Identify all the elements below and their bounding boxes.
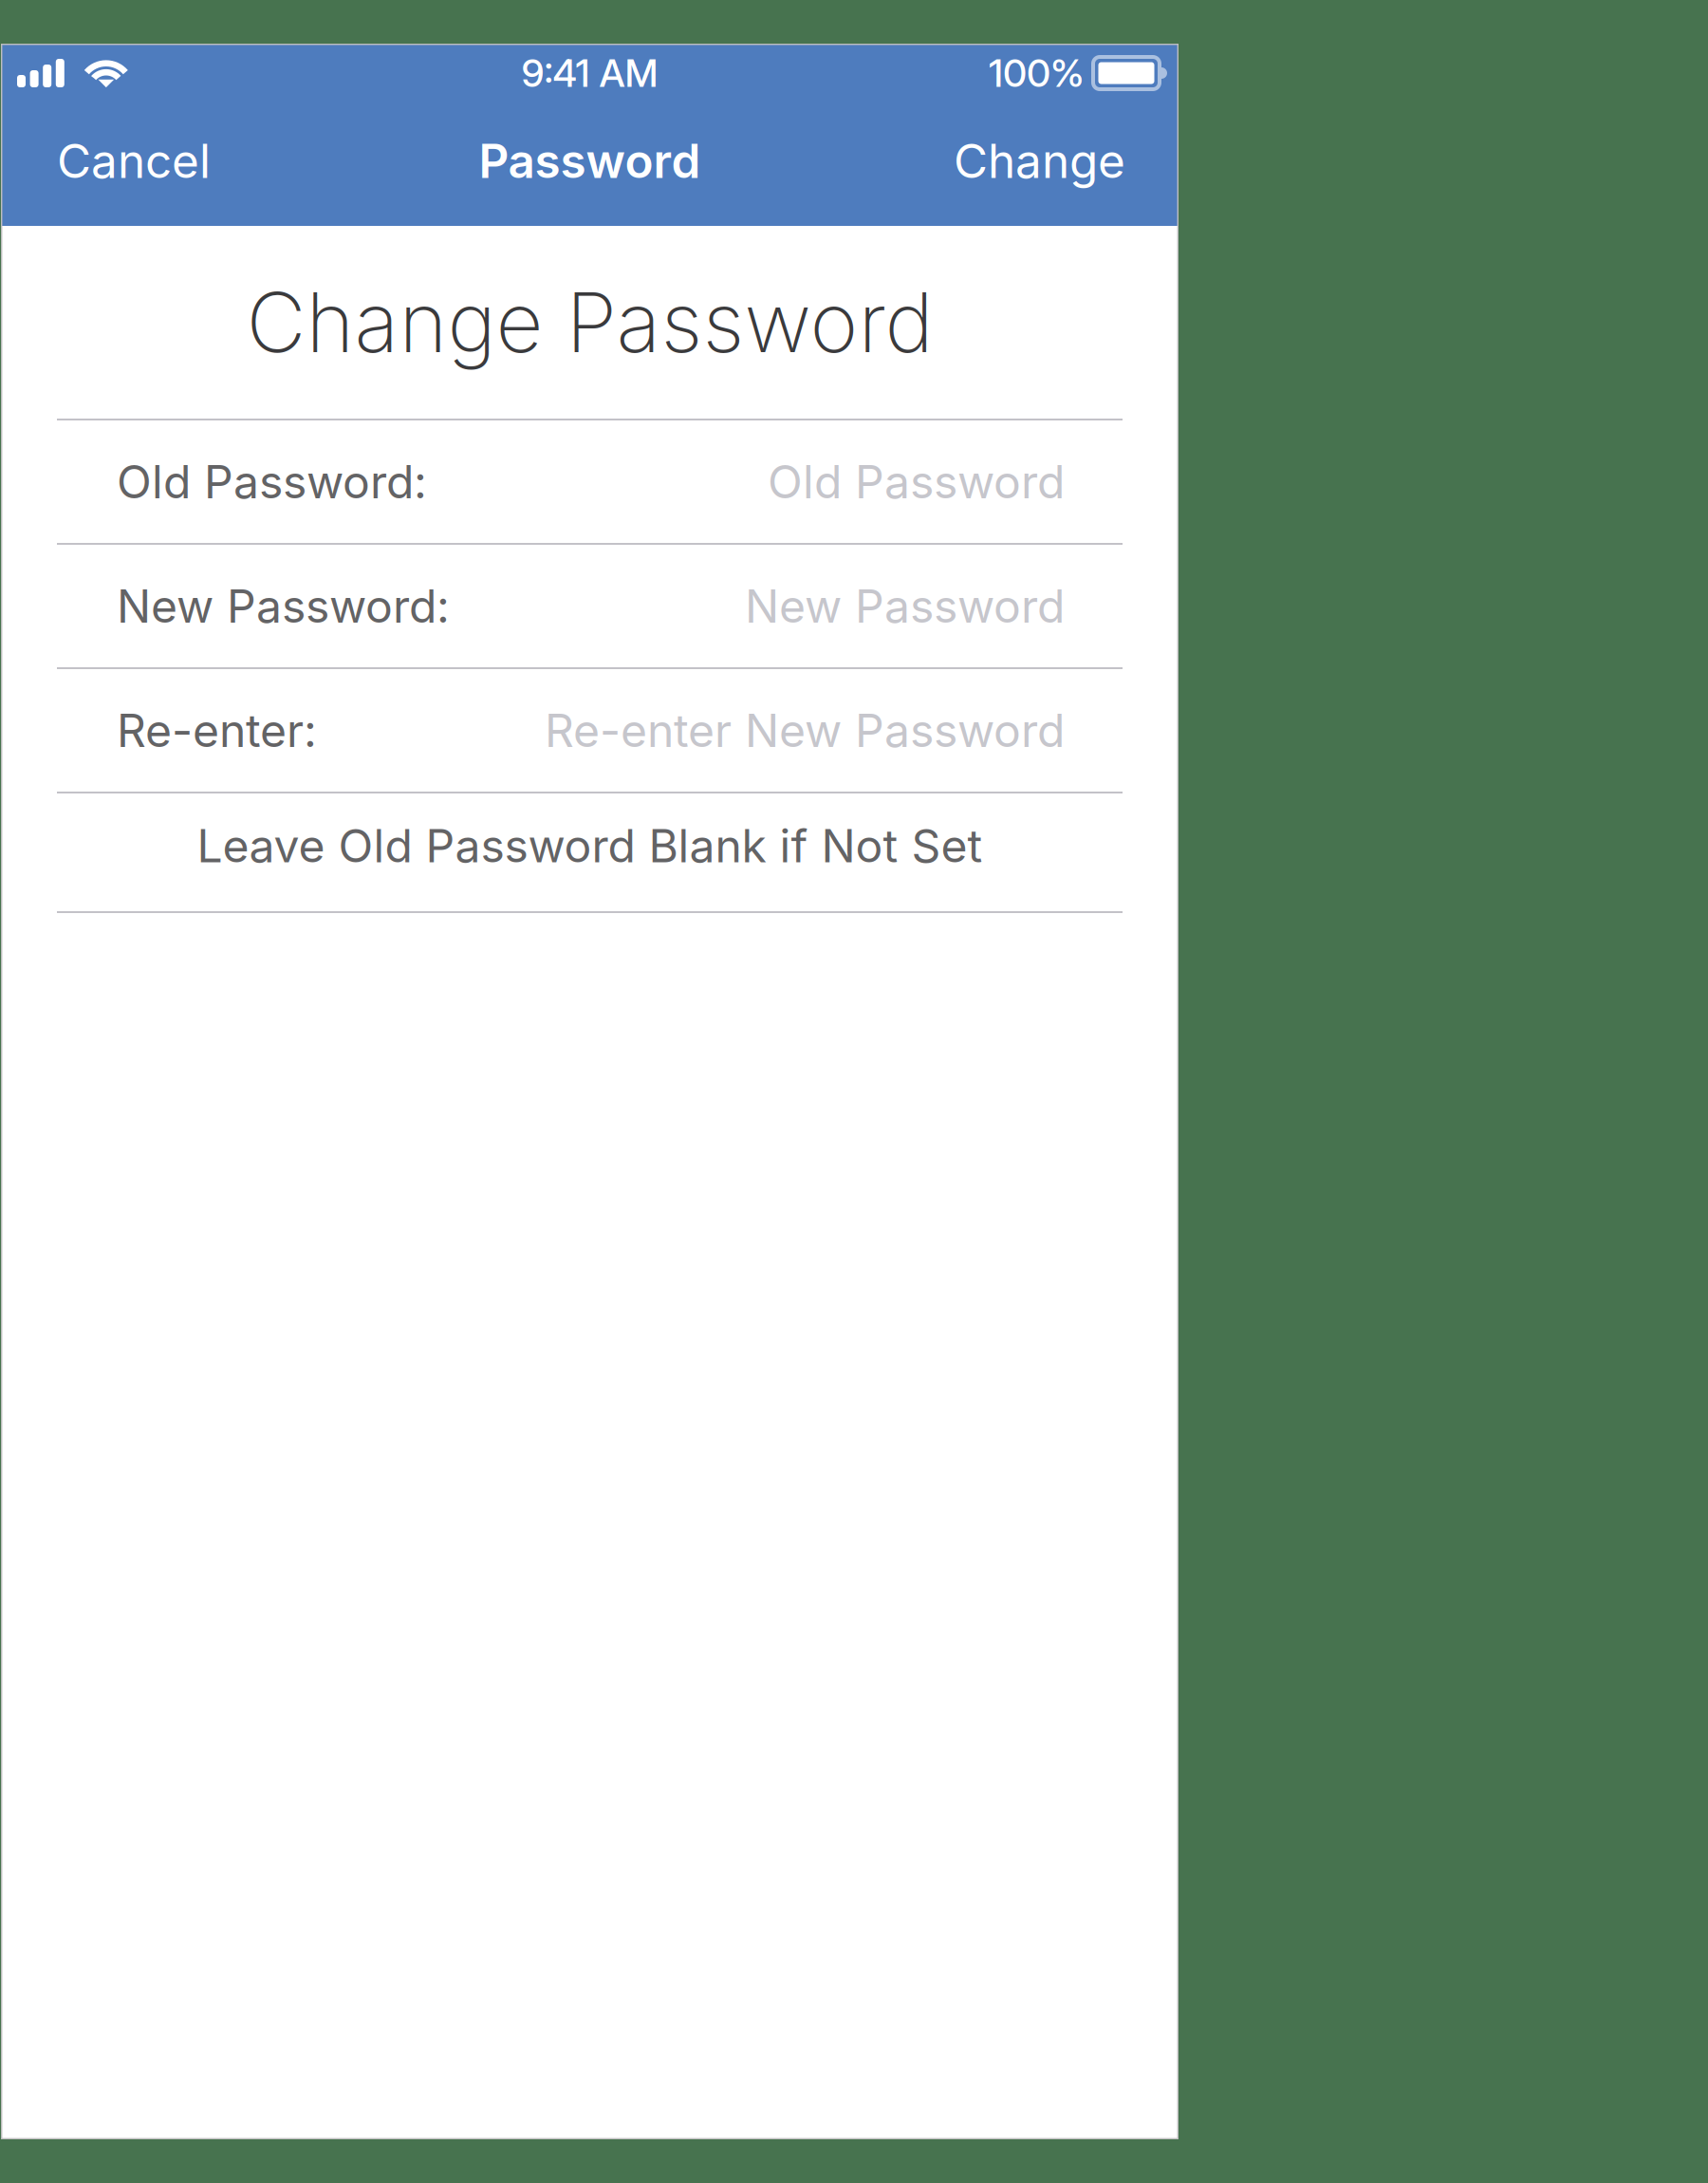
- staticText: Leave Old Password Blank if Not Set: [197, 818, 983, 873]
- staticText: Old Password: [768, 454, 1065, 509]
- staticText: Change: [954, 133, 1125, 189]
- staticText: Re-enter:: [117, 703, 317, 758]
- staticText: Change Password: [246, 272, 933, 372]
- button[interactable]: Re-enter:: [1, 669, 1179, 792]
- staticText: 100%: [989, 50, 1085, 96]
- staticText: Password: [479, 133, 701, 189]
- staticText: New Password: [745, 578, 1065, 634]
- button[interactable]: Cancel: [1, 103, 239, 226]
- staticText: Re-enter New Password: [545, 703, 1065, 758]
- staticText: 9:41 AM: [521, 50, 658, 96]
- staticText: Old Password:: [117, 454, 427, 509]
- button[interactable]: Old Password:: [1, 420, 1179, 543]
- staticText: New Password:: [117, 578, 450, 634]
- button[interactable]: New Password:: [1, 545, 1179, 667]
- button[interactable]: Change: [925, 103, 1179, 226]
- staticText: Cancel: [57, 133, 211, 189]
